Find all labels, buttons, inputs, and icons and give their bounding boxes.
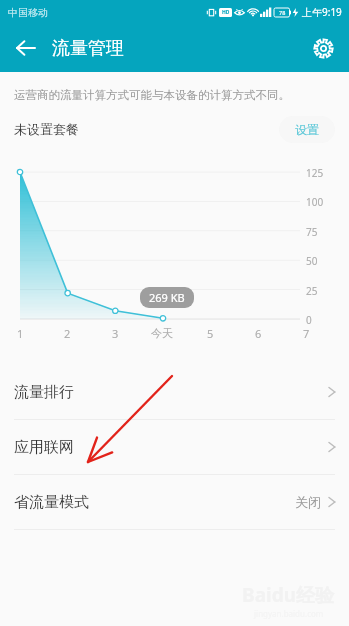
staticText: 25 xyxy=(306,284,318,298)
button[interactable]: 流量排行 xyxy=(0,365,349,419)
staticText: 3 xyxy=(112,326,119,341)
staticText: 78 xyxy=(279,9,286,16)
staticText: 75 xyxy=(306,225,318,239)
staticText: 1 xyxy=(17,326,24,341)
staticText: 2 xyxy=(64,326,71,341)
staticText: 流量排行 xyxy=(14,383,74,402)
staticText: 0 xyxy=(306,313,312,327)
staticText: 运营商的流量计算方式可能与本设备的计算方式不同。 xyxy=(14,88,290,102)
staticText: 关闭 xyxy=(295,494,321,510)
staticText: 今天 xyxy=(151,326,173,340)
button[interactable]: Back xyxy=(6,28,46,68)
staticText: 设置 xyxy=(295,122,319,137)
staticText: 7 xyxy=(303,326,310,341)
button[interactable]: 应用联网 xyxy=(0,420,349,474)
staticText: 省流量模式 xyxy=(14,493,89,512)
staticText: 5 xyxy=(207,326,214,341)
staticText: 125 xyxy=(306,166,324,180)
staticText: 100 xyxy=(306,195,324,209)
button[interactable]: Settings xyxy=(303,28,343,68)
staticText: 269 KB xyxy=(149,290,185,305)
staticText: 6 xyxy=(255,326,262,341)
staticText: 未设置套餐 xyxy=(14,121,79,137)
staticText: 流量管理 xyxy=(52,37,124,60)
button[interactable]: 设置 xyxy=(279,116,335,143)
staticText: 应用联网 xyxy=(14,438,74,457)
button[interactable]: 省流量模式 xyxy=(0,475,349,529)
staticText: 50 xyxy=(306,254,318,268)
staticText: 上午9:19 xyxy=(302,5,342,19)
staticText: HD xyxy=(222,9,230,16)
staticText: Baidu经验 xyxy=(242,582,335,608)
staticText: 中国移动 xyxy=(8,6,48,19)
